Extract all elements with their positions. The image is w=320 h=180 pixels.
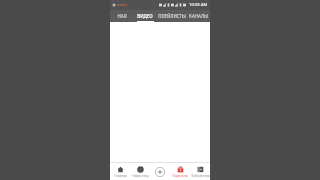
button[interactable]: Главная [110, 163, 130, 180]
staticText: Библиотека [191, 174, 210, 178]
staticText: 10:03 AM [189, 2, 208, 8]
button[interactable]: Библиотека [190, 163, 210, 180]
button[interactable]: КАНАЛЫ [186, 10, 210, 22]
button[interactable]: Добавить [150, 163, 170, 180]
staticText: Подписки [172, 174, 188, 178]
staticText: ВИДЕО [137, 13, 153, 19]
button[interactable]: ВИДЕО [133, 10, 157, 22]
staticText: ПЛЕЙЛИСТЫ [158, 13, 186, 19]
button[interactable]: ПЛЕЙЛИСТЫ [157, 10, 186, 22]
staticText: Главная [114, 174, 127, 178]
button[interactable]: Подписки [170, 163, 190, 180]
button[interactable]: НАЯ [110, 10, 133, 22]
button[interactable]: Навигатор [130, 163, 150, 180]
staticText: Навигатор [132, 174, 149, 178]
staticText: НАЯ [117, 13, 127, 19]
staticText: КАНАЛЫ [189, 13, 208, 19]
